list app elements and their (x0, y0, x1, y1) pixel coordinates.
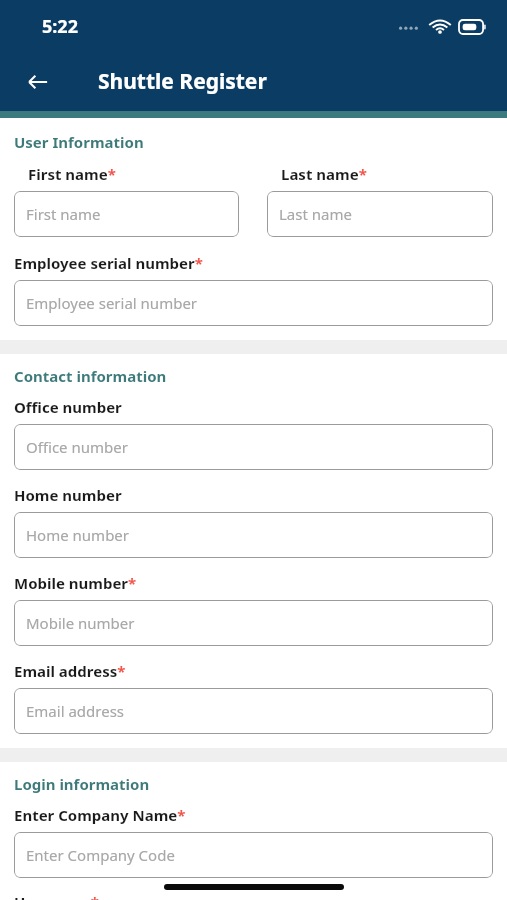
button[interactable]: First name (14, 191, 239, 237)
staticText: User Information (14, 132, 144, 152)
staticText: Office number (14, 397, 122, 417)
staticText: Login information (14, 774, 150, 794)
staticText: First name* (28, 164, 116, 184)
staticText: Office number (26, 437, 128, 457)
staticText: Last name* (281, 164, 367, 184)
button[interactable]: Email address (14, 688, 493, 734)
staticText: Username* (14, 892, 99, 900)
button[interactable]: Last name (267, 191, 493, 237)
staticText: Mobile number* (14, 573, 137, 593)
staticText: Last name (279, 204, 352, 224)
button[interactable]: Home number (14, 512, 493, 558)
button[interactable]: Employee serial number (14, 280, 493, 326)
staticText: Shuttle Register (98, 67, 267, 96)
staticText: Enter Company Name* (14, 805, 186, 825)
button[interactable]: Office number (14, 424, 493, 470)
staticText: Contact information (14, 366, 167, 386)
staticText: Email address* (14, 661, 126, 681)
staticText: Employee serial number (26, 293, 198, 313)
staticText: Enter Company Code (26, 845, 175, 865)
button[interactable]: Mobile number (14, 600, 493, 646)
staticText: Home number (26, 525, 130, 545)
button[interactable]: Enter Company Code (14, 832, 493, 878)
staticText: Mobile number (26, 613, 135, 633)
staticText: Email address (26, 701, 125, 721)
staticText: First name (26, 204, 101, 224)
staticText: Employee serial number* (14, 253, 203, 273)
staticText: 5:22 (42, 14, 78, 39)
button[interactable]: Back (14, 58, 62, 106)
staticText: Home number (14, 485, 122, 505)
